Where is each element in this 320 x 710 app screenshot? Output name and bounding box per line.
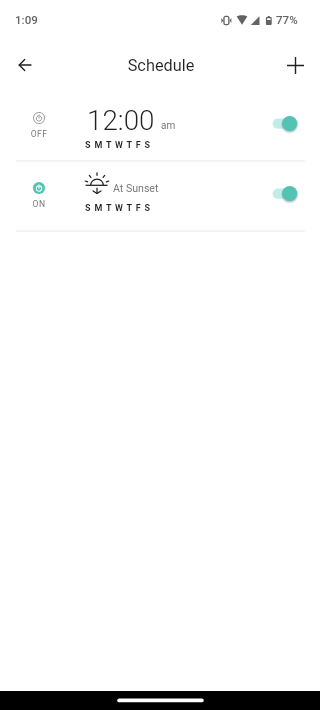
button[interactable]: Turn alarm on	[0, 90, 320, 160]
button[interactable]: Add alarm	[275, 45, 315, 85]
staticText: ON	[25, 199, 53, 209]
button[interactable]: Turn alarm off	[0, 160, 320, 230]
button[interactable]: Turn alarm off	[25, 174, 53, 202]
button[interactable]: Turn alarm on	[25, 104, 53, 132]
staticText: S M T W T F S	[85, 140, 151, 151]
staticText: OFF	[25, 129, 53, 139]
staticText: 12:00	[87, 104, 155, 137]
staticText: 1:09	[15, 13, 38, 27]
button[interactable]: Navigate up	[5, 45, 45, 85]
staticText: S M T W T F S	[85, 203, 151, 214]
staticText: At Sunset	[113, 182, 159, 194]
button[interactable]: Toggle alarm	[268, 115, 304, 143]
button[interactable]: Toggle alarm	[268, 185, 304, 213]
staticText: am	[161, 120, 176, 132]
staticText: 77%	[276, 13, 298, 27]
staticText: Schedule	[1, 56, 320, 75]
